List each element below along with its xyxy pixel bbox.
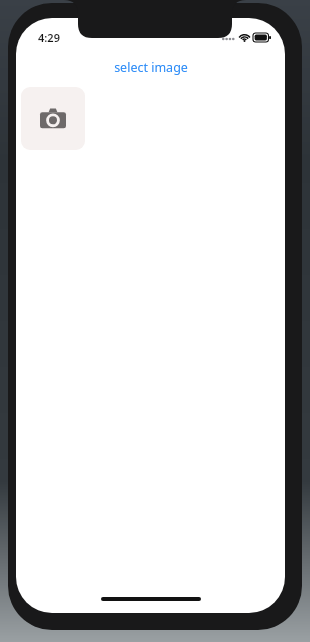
staticText: 4:29 bbox=[38, 30, 60, 45]
staticText: select image bbox=[114, 59, 188, 76]
button[interactable]: select image bbox=[16, 56, 285, 79]
button[interactable]: Select image bbox=[21, 87, 85, 150]
